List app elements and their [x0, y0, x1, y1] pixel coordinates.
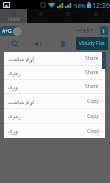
button[interactable]: زمری	[4, 66, 105, 79]
staticText: زمری	[8, 70, 21, 76]
staticText: Share	[85, 69, 99, 76]
button[interactable]: Delete	[59, 40, 67, 48]
staticText: HOME	[8, 17, 20, 22]
button[interactable]: Sound	[34, 40, 42, 48]
button[interactable]: Options	[100, 26, 108, 35]
staticText: Share	[85, 55, 99, 62]
button[interactable]: زمری	[4, 109, 105, 123]
button[interactable]: FAVORITE	[27, 9, 54, 23]
button[interactable]: HOME	[0, 9, 27, 23]
staticText: Copy	[87, 98, 99, 105]
staticText: A+G	[2, 28, 12, 35]
staticText: 12:26	[92, 1, 110, 10]
staticText: لړم میاشت	[8, 98, 34, 105]
staticText: GAMES	[61, 17, 75, 22]
staticText: i	[103, 27, 105, 35]
staticText: وږی	[8, 128, 18, 134]
button[interactable]: vStudy Flat	[76, 37, 108, 50]
staticText: Copy	[87, 113, 99, 120]
button[interactable]: وږی	[4, 80, 105, 93]
staticText: vStudy Flat	[79, 40, 105, 47]
button[interactable]: Search	[11, 40, 19, 48]
staticText: دؤوب	[76, 25, 93, 33]
button[interactable]: وږی	[4, 124, 105, 138]
staticText: وږی	[8, 84, 18, 90]
button[interactable]: GAMES	[54, 9, 82, 23]
staticText: Copy	[87, 128, 99, 135]
staticText: لړم میاشت	[8, 55, 34, 62]
button[interactable]: لړم میاشت	[4, 52, 105, 65]
staticText: 58%	[74, 2, 86, 10]
button[interactable]: لړم میاشت	[4, 94, 105, 108]
button[interactable]: A+G	[0, 26, 22, 36]
staticText: Share	[85, 83, 99, 90]
staticText: زمری	[8, 113, 21, 119]
button[interactable]: OTHERS	[82, 9, 110, 23]
